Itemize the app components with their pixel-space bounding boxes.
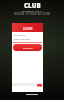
staticText: MEMBER AREA	[22, 9, 42, 12]
button[interactable]: SIGN IN	[13, 44, 42, 51]
staticText: CLUB	[24, 1, 41, 9]
staticText: GO	[38, 85, 41, 87]
button[interactable]: GO	[37, 84, 42, 87]
staticText: LOGIN	[23, 27, 33, 31]
staticText: Username	[16, 34, 26, 37]
staticText: SIGN IN	[23, 46, 33, 49]
staticText: SIGN IN TO YOUR ACCOUNT	[14, 12, 51, 16]
staticText: enter your email	[14, 38, 31, 41]
